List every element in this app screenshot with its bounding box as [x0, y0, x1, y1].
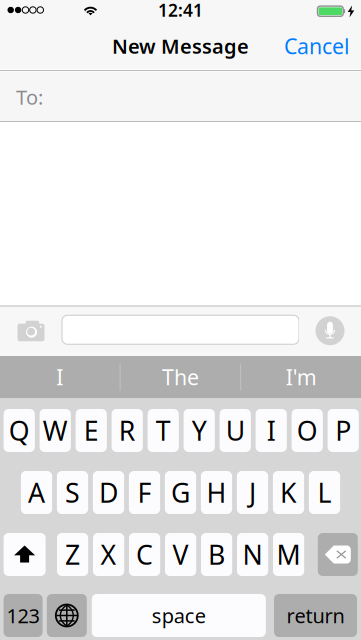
staticText: A [28, 475, 45, 510]
button[interactable]: P [328, 409, 359, 452]
staticText: F [137, 475, 151, 510]
staticText: Q [9, 413, 30, 448]
button[interactable]: Cancel [273, 20, 361, 72]
button[interactable]: E [76, 409, 107, 452]
button[interactable]: Z [57, 533, 88, 576]
staticText: O [297, 413, 318, 448]
staticText: W [43, 413, 68, 448]
staticText: K [280, 475, 297, 510]
button[interactable]: K [273, 471, 304, 514]
staticText: Z [65, 537, 80, 572]
button[interactable]: I [0, 356, 120, 398]
button[interactable]: Q [4, 409, 35, 452]
staticText: The [162, 363, 199, 391]
button[interactable]: Next keyboard [47, 594, 87, 637]
staticText: D [99, 475, 118, 510]
staticText: C [136, 537, 153, 572]
staticText: space [152, 602, 206, 629]
button[interactable]: F [129, 471, 160, 514]
staticText: 12:41 [158, 0, 203, 21]
staticText: N [243, 537, 263, 572]
staticText: E [84, 413, 99, 448]
staticText: I [267, 413, 276, 448]
button[interactable]: D [93, 471, 124, 514]
staticText: P [335, 413, 351, 448]
staticText: U [226, 413, 245, 448]
button[interactable]: N [237, 533, 268, 576]
staticText: return [286, 602, 344, 629]
button[interactable]: R [112, 409, 143, 452]
button[interactable]: M [273, 533, 304, 576]
button[interactable]: V [165, 533, 196, 576]
button[interactable]: T [148, 409, 179, 452]
staticText: J [249, 475, 256, 510]
staticText: V [173, 537, 189, 572]
button[interactable]: H [201, 471, 232, 514]
button[interactable]: Delete [318, 533, 358, 576]
button[interactable]: L [309, 471, 340, 514]
staticText: X [101, 537, 117, 572]
button[interactable]: return [274, 594, 357, 637]
button[interactable]: space [92, 594, 266, 637]
staticText: B [208, 537, 225, 572]
button[interactable]: U [220, 409, 251, 452]
button[interactable]: I'm [241, 356, 361, 398]
button[interactable]: 123 [4, 594, 43, 637]
staticText: T [156, 413, 171, 448]
button[interactable]: Y [184, 409, 215, 452]
button[interactable]: S [57, 471, 88, 514]
staticText: Cancel [284, 32, 350, 60]
staticText: I'm [286, 363, 317, 391]
staticText: New Message [112, 33, 249, 59]
button[interactable]: I [256, 409, 287, 452]
staticText: 123 [7, 602, 40, 629]
button[interactable]: X [93, 533, 124, 576]
button[interactable]: G [165, 471, 196, 514]
button[interactable]: The [121, 356, 240, 398]
button[interactable]: A [21, 471, 52, 514]
staticText: R [119, 413, 136, 448]
staticText: To: [16, 84, 43, 110]
button[interactable]: B [201, 533, 232, 576]
button[interactable]: Dictation [299, 305, 361, 356]
button[interactable]: Camera [0, 305, 62, 356]
button[interactable]: W [40, 409, 71, 452]
staticText: I [56, 363, 63, 391]
staticText: Y [192, 413, 207, 448]
button[interactable]: Shift [4, 533, 46, 576]
button[interactable]: C [129, 533, 160, 576]
button[interactable]: O [292, 409, 323, 452]
staticText: M [277, 537, 301, 572]
staticText: S [65, 475, 80, 510]
staticText: G [171, 475, 190, 510]
staticText: L [317, 475, 331, 510]
button[interactable]: J [237, 471, 268, 514]
staticText: H [206, 475, 226, 510]
